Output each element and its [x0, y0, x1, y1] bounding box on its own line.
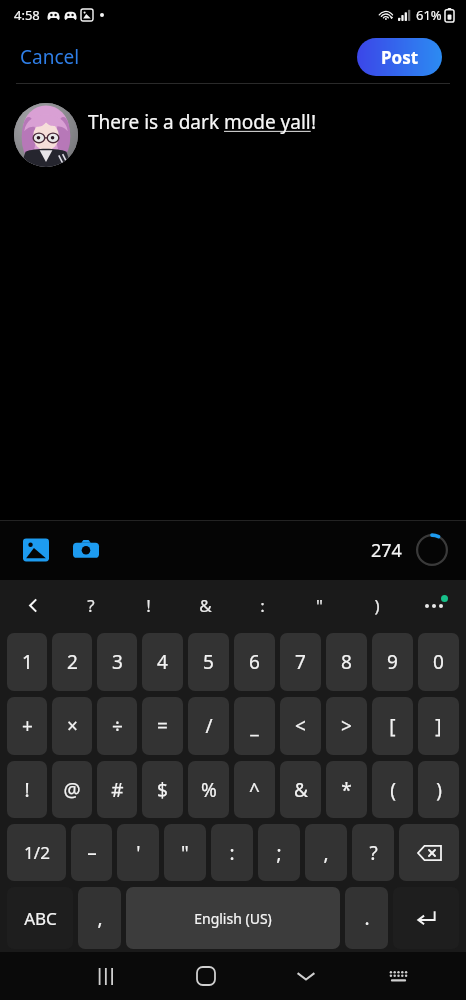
button[interactable]: & [280, 761, 321, 818]
button[interactable]: @ [52, 761, 92, 818]
button[interactable]: 0 [418, 633, 459, 691]
button[interactable]: ^ [234, 761, 275, 818]
button[interactable]: Post [357, 38, 442, 76]
button[interactable]: Home [156, 952, 256, 1000]
button[interactable]: [ [372, 697, 413, 755]
button[interactable]: ABC [7, 887, 73, 949]
button[interactable]: 2 [52, 633, 92, 691]
button[interactable]: = [142, 697, 183, 755]
button[interactable]: : [211, 824, 253, 881]
button[interactable]: × [52, 697, 92, 755]
staticText: % [201, 777, 217, 803]
staticText: & [199, 594, 212, 617]
staticText: 8 [341, 649, 352, 675]
button[interactable]: ] [418, 697, 459, 755]
button[interactable]: 7 [280, 633, 321, 691]
button[interactable]: + [7, 697, 47, 755]
button[interactable]: / [188, 697, 229, 755]
staticText: " [181, 840, 189, 866]
button[interactable]: More options [405, 580, 462, 630]
button[interactable]: > [326, 697, 367, 755]
button[interactable]: % [188, 761, 229, 818]
staticText: 3 [112, 649, 123, 675]
staticText: & [294, 777, 308, 803]
staticText: # [111, 777, 124, 803]
button[interactable]: 9 [372, 633, 413, 691]
button[interactable]: Cancel [10, 38, 90, 76]
staticText: ] [435, 713, 442, 739]
button[interactable]: Character count [414, 532, 450, 568]
button[interactable]: English (US) [126, 887, 340, 949]
button[interactable]: Switch keyboard [356, 952, 441, 1000]
staticText: Cancel [20, 44, 80, 70]
button[interactable]: Take photo [64, 528, 108, 572]
button[interactable]: * [326, 761, 367, 818]
button[interactable]: , [78, 887, 121, 949]
button[interactable]: 1/2 [7, 824, 66, 881]
staticText: : [229, 840, 235, 866]
staticText: : [260, 594, 265, 617]
button[interactable]: ; [258, 824, 300, 881]
staticText: @ [63, 777, 81, 803]
staticText: ? [87, 594, 95, 617]
button[interactable] [14, 103, 78, 167]
button[interactable]: # [97, 761, 137, 818]
button[interactable]: & [177, 580, 234, 630]
staticText: 1/2 [24, 841, 50, 864]
button[interactable]: 6 [234, 633, 275, 691]
staticText: 6 [249, 649, 260, 675]
button[interactable]: 8 [326, 633, 367, 691]
button[interactable]: Recents [56, 952, 156, 1000]
staticText: 1 [22, 649, 33, 675]
button[interactable]: ) [418, 761, 459, 818]
staticText: . [364, 905, 370, 931]
staticText: ? [369, 840, 378, 866]
staticText: ) [374, 594, 380, 617]
button[interactable]: 3 [97, 633, 137, 691]
staticText: 4 [157, 649, 168, 675]
button[interactable]: < [280, 697, 321, 755]
button[interactable]: : [234, 580, 291, 630]
button[interactable]: $ [142, 761, 183, 818]
button[interactable]: ? [62, 580, 120, 630]
staticText: , [323, 840, 329, 866]
staticText: ( [390, 777, 396, 803]
button[interactable]: , [305, 824, 347, 881]
button[interactable]: Enter [393, 887, 459, 949]
button[interactable]: Hide keyboard [256, 952, 356, 1000]
button[interactable]: 5 [188, 633, 229, 691]
button[interactable]: _ [234, 697, 275, 755]
button[interactable]: ! [7, 761, 47, 818]
button[interactable]: " [164, 824, 206, 881]
staticText: – [87, 840, 97, 866]
staticText: , [97, 905, 103, 931]
staticText: ' [136, 840, 141, 866]
staticText: There is a dark [88, 109, 224, 135]
staticText: 0 [433, 649, 444, 675]
button[interactable]: – [71, 824, 112, 881]
button[interactable]: ? [352, 824, 394, 881]
button[interactable]: ( [372, 761, 413, 818]
button[interactable]: Backspace [399, 824, 459, 881]
staticText: ^ [249, 777, 260, 803]
button[interactable]: 1 [7, 633, 47, 691]
staticText: 274 [371, 538, 402, 563]
button[interactable]: ) [348, 580, 405, 630]
staticText: ) [436, 777, 442, 803]
button[interactable]: ! [120, 580, 177, 630]
staticText: ; [276, 840, 282, 866]
button[interactable]: Previous [4, 580, 62, 630]
staticText: 61% [416, 6, 442, 24]
button[interactable]: . [345, 887, 388, 949]
button[interactable]: ÷ [97, 697, 137, 755]
staticText: Post [381, 46, 419, 69]
button[interactable]: ' [117, 824, 159, 881]
button[interactable]: 4 [142, 633, 183, 691]
staticText: $ [157, 777, 168, 803]
button[interactable]: " [291, 580, 348, 630]
staticText: " [316, 594, 323, 617]
staticText: / [205, 713, 213, 739]
button[interactable]: Add photo [14, 528, 58, 572]
staticText: ÷ [112, 713, 123, 739]
staticText: + [22, 713, 33, 739]
